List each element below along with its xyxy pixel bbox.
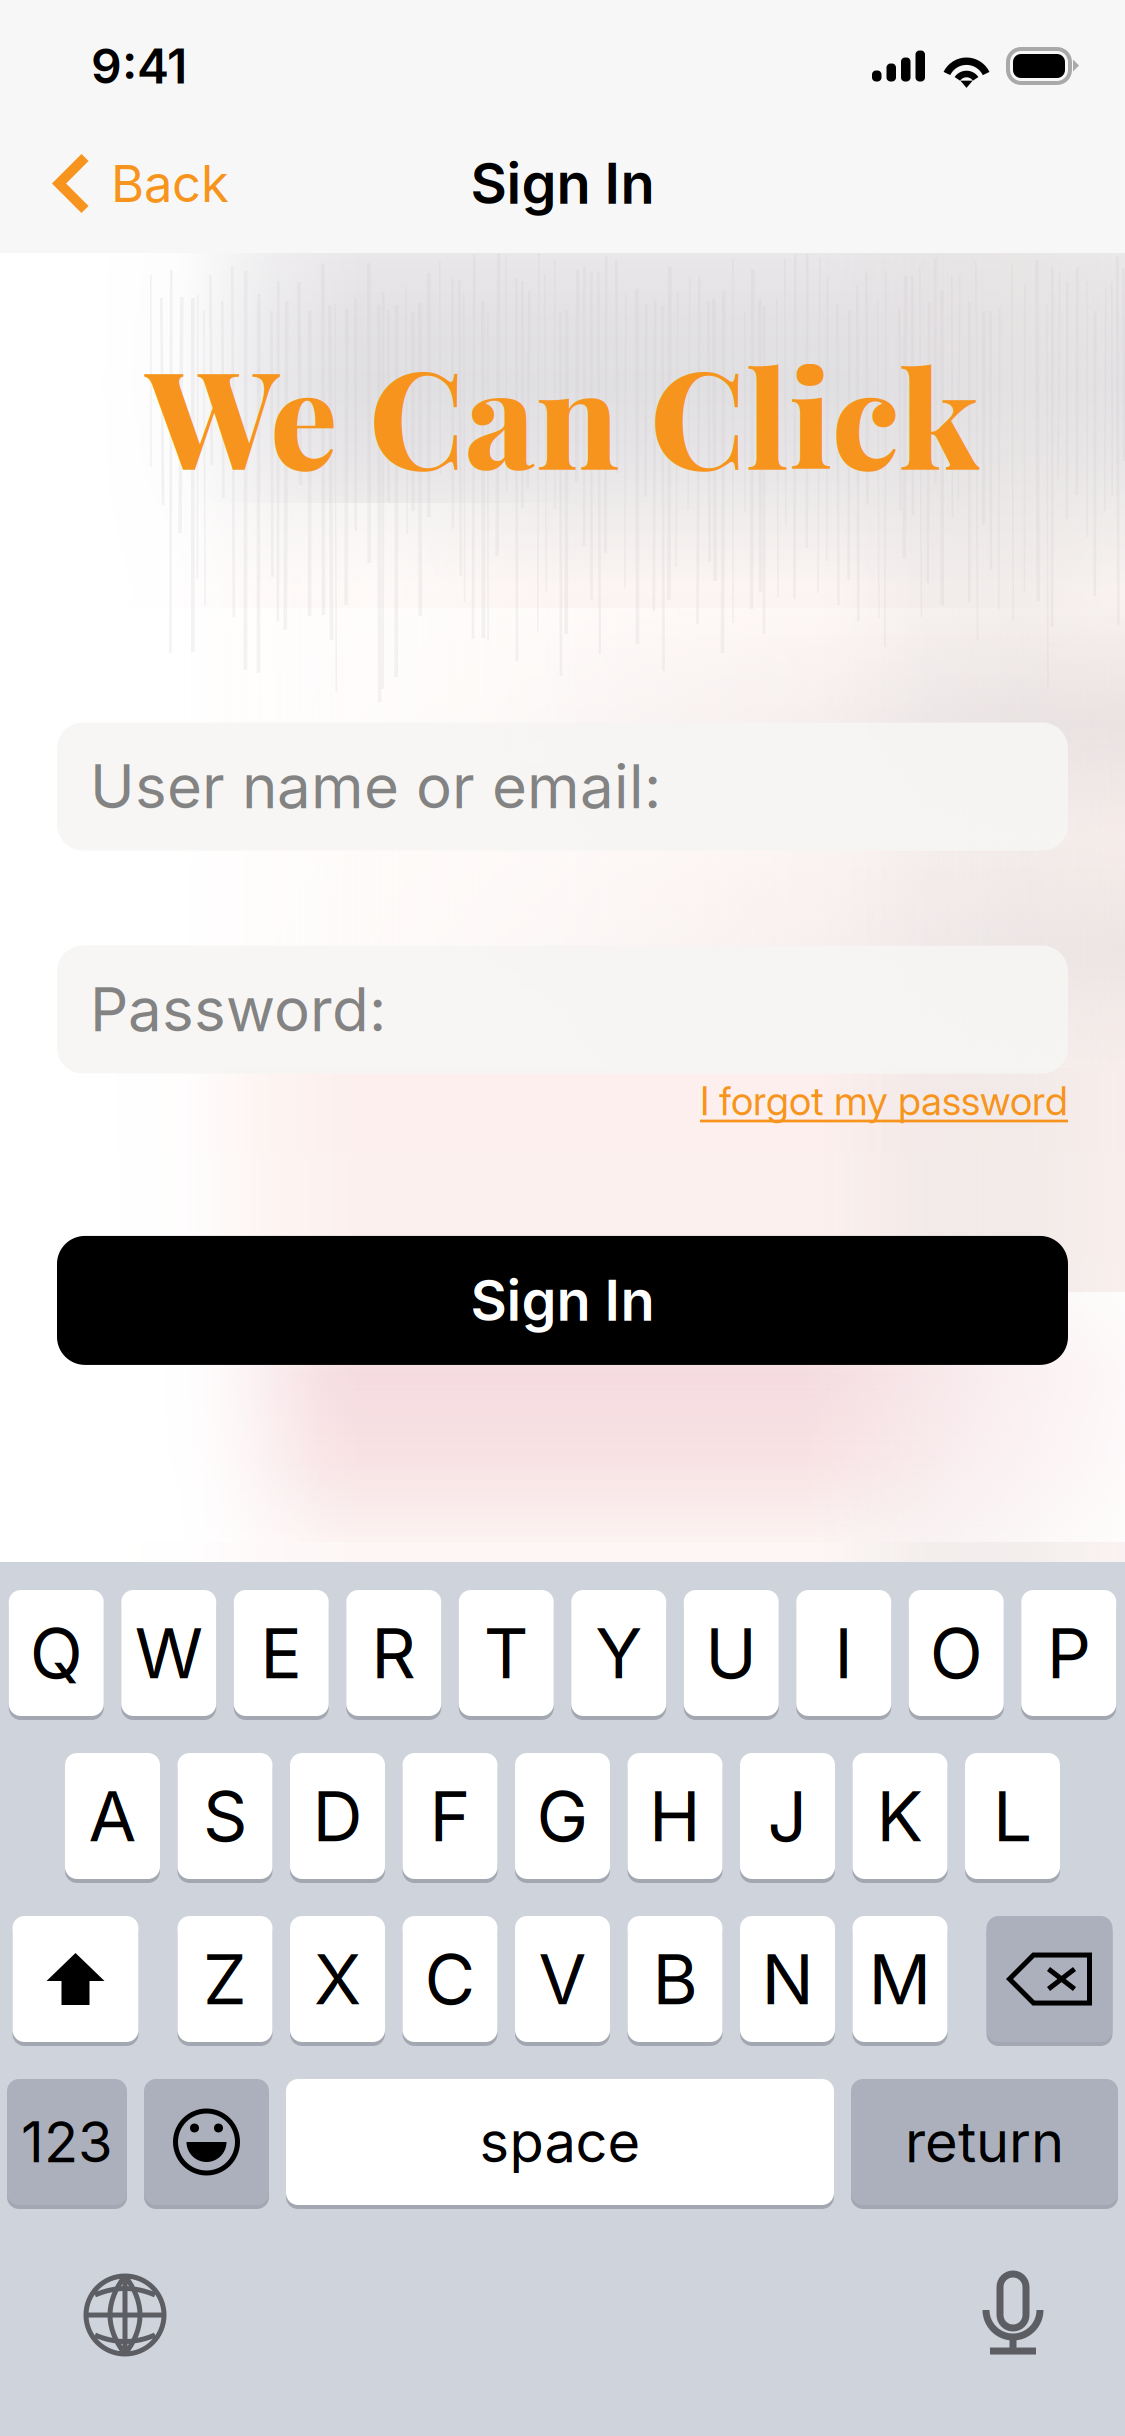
button[interactable]: W bbox=[121, 1592, 216, 1718]
staticText: A bbox=[88, 1774, 136, 1858]
button[interactable]: C bbox=[402, 1918, 497, 2044]
staticText: G bbox=[536, 1774, 588, 1858]
staticText: P bbox=[1047, 1611, 1091, 1695]
button[interactable]: P bbox=[1021, 1592, 1116, 1718]
staticText: V bbox=[538, 1937, 586, 2021]
staticText: Sign In bbox=[470, 1266, 654, 1334]
staticText: Sign In bbox=[470, 150, 654, 217]
button[interactable]: Shift bbox=[12, 1918, 138, 2044]
button[interactable]: Z bbox=[177, 1918, 272, 2044]
staticText: Password: bbox=[90, 973, 386, 1046]
button[interactable]: L bbox=[965, 1755, 1060, 1881]
button[interactable]: Back bbox=[0, 139, 253, 228]
staticText: We Can Click bbox=[146, 324, 979, 503]
button[interactable]: Dictate bbox=[963, 2262, 1063, 2368]
button[interactable]: M bbox=[852, 1918, 947, 2044]
button[interactable]: return bbox=[851, 2081, 1118, 2207]
staticText: Q bbox=[30, 1611, 83, 1695]
button[interactable]: X bbox=[290, 1918, 385, 2044]
staticText: return bbox=[905, 2108, 1064, 2176]
button[interactable]: space bbox=[286, 2081, 834, 2207]
staticText: M bbox=[868, 1937, 931, 2021]
button[interactable]: O bbox=[909, 1592, 1004, 1718]
staticText: L bbox=[993, 1774, 1032, 1858]
staticText: E bbox=[260, 1611, 302, 1695]
button[interactable]: 123 bbox=[7, 2081, 127, 2207]
staticText: N bbox=[761, 1937, 813, 2021]
button[interactable]: K bbox=[852, 1755, 947, 1881]
button[interactable]: S bbox=[177, 1755, 272, 1881]
button[interactable]: D bbox=[290, 1755, 385, 1881]
staticText: F bbox=[429, 1774, 470, 1858]
button[interactable]: Y bbox=[571, 1592, 666, 1718]
button[interactable]: V bbox=[515, 1918, 610, 2044]
button[interactable]: A bbox=[65, 1755, 160, 1881]
button[interactable]: User name or email: bbox=[57, 722, 1068, 850]
staticText: Back bbox=[111, 153, 229, 214]
button[interactable]: N bbox=[740, 1918, 835, 2044]
button[interactable]: J bbox=[740, 1755, 835, 1881]
button[interactable]: R bbox=[346, 1592, 441, 1718]
staticText: I forgot my password bbox=[700, 1076, 1068, 1125]
button[interactable]: Next keyboard bbox=[75, 2265, 175, 2365]
staticText: D bbox=[312, 1774, 362, 1858]
staticText: 9:41 bbox=[91, 37, 187, 95]
button[interactable]: Sign In bbox=[57, 1236, 1068, 1365]
staticText: H bbox=[649, 1774, 701, 1858]
button[interactable]: I forgot my password bbox=[700, 1072, 1068, 1129]
button[interactable]: T bbox=[459, 1592, 554, 1718]
staticText: 123 bbox=[21, 2108, 113, 2176]
staticText: I bbox=[834, 1611, 853, 1695]
button[interactable]: Emoji bbox=[144, 2081, 269, 2207]
button[interactable]: Delete bbox=[986, 1918, 1112, 2044]
staticText: U bbox=[705, 1611, 757, 1695]
staticText: Y bbox=[595, 1611, 642, 1695]
button[interactable]: H bbox=[627, 1755, 722, 1881]
staticText: C bbox=[424, 1937, 475, 2021]
staticText: X bbox=[314, 1937, 361, 2021]
staticText: R bbox=[371, 1611, 416, 1695]
staticText: O bbox=[930, 1611, 983, 1695]
button[interactable]: I bbox=[796, 1592, 891, 1718]
button[interactable]: Q bbox=[9, 1592, 104, 1718]
staticText: User name or email: bbox=[90, 750, 661, 823]
button[interactable]: F bbox=[402, 1755, 497, 1881]
staticText: space bbox=[479, 2108, 640, 2176]
staticText: K bbox=[876, 1774, 923, 1858]
staticText: J bbox=[767, 1774, 807, 1858]
staticText: B bbox=[652, 1937, 697, 2021]
staticText: W bbox=[135, 1611, 203, 1695]
button[interactable]: B bbox=[627, 1918, 722, 2044]
staticText: S bbox=[203, 1774, 247, 1858]
button[interactable]: G bbox=[515, 1755, 610, 1881]
button[interactable]: U bbox=[684, 1592, 779, 1718]
staticText: Z bbox=[203, 1937, 247, 2021]
button[interactable]: Password: bbox=[57, 945, 1068, 1073]
staticText: T bbox=[484, 1611, 529, 1695]
button[interactable]: E bbox=[234, 1592, 329, 1718]
